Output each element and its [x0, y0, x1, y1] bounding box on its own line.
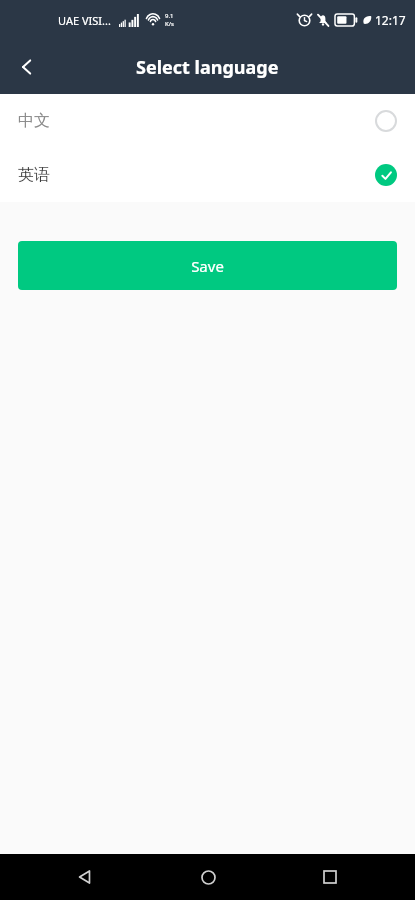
button[interactable]: Back — [0, 40, 54, 94]
button[interactable]: 英语 — [0, 148, 415, 202]
button[interactable]: Save — [18, 241, 397, 290]
staticText: K/s — [165, 20, 174, 28]
staticText: Save — [191, 256, 224, 276]
button[interactable]: 中文 — [0, 94, 415, 148]
staticText: UAE VISI... — [58, 13, 111, 28]
button[interactable]: Home — [185, 854, 231, 900]
staticText: 中文 — [18, 111, 50, 131]
button[interactable]: Recents — [307, 854, 353, 900]
staticText: 9.1 — [165, 12, 174, 20]
staticText: 12:17 — [375, 12, 406, 28]
staticText: Select language — [136, 55, 279, 80]
button[interactable]: Back — [62, 854, 108, 900]
staticText: 英语 — [18, 165, 50, 185]
